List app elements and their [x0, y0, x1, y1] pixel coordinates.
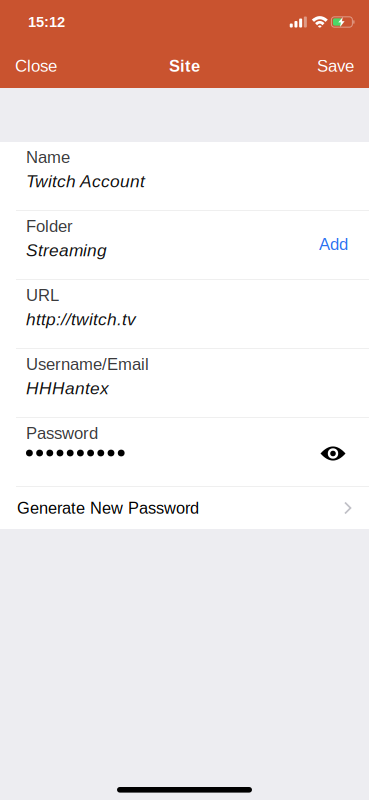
button[interactable]: Close — [0, 44, 67, 88]
button[interactable]: Show password — [313, 418, 353, 485]
staticText: Name — [26, 148, 70, 167]
button[interactable]: Save — [307, 44, 369, 88]
staticText: Site — [169, 57, 200, 75]
staticText: Add — [319, 235, 348, 254]
staticText: 15:12 — [28, 14, 65, 30]
staticText: HHHantex — [26, 379, 109, 398]
staticText: http://twitch.tv — [26, 310, 136, 329]
button[interactable]: Generate New Password — [0, 487, 369, 529]
staticText: Twitch Account — [26, 172, 145, 191]
staticText: Generate New Password — [17, 499, 199, 517]
staticText: URL — [26, 286, 59, 305]
staticText: Streaming — [26, 241, 107, 260]
button[interactable]: Add — [307, 211, 348, 270]
staticText: Password — [26, 424, 98, 443]
staticText: Close — [15, 57, 57, 75]
staticText: Folder — [26, 217, 73, 236]
staticText: Username/Email — [26, 355, 149, 374]
staticText: Save — [317, 57, 354, 75]
